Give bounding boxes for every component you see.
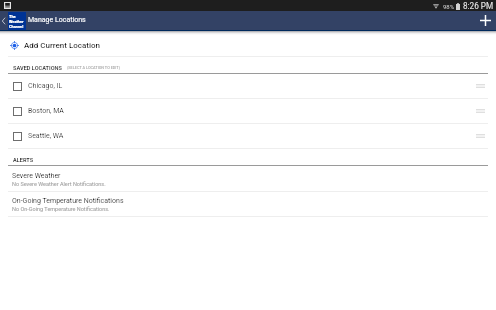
staticText: No Severe Weather Alert Notifications.: [12, 181, 106, 187]
staticText: Weather: [9, 19, 24, 24]
staticText: ALERTS: [13, 157, 34, 164]
button[interactable]: Boston, MA: [0, 99, 496, 123]
button[interactable]: Severe Weather: [0, 166, 496, 191]
staticText: On-Going Temperature Notifications: [12, 197, 124, 205]
button[interactable]: Add Current Location: [0, 35, 496, 56]
button[interactable]: Seattle, WA: [0, 124, 496, 148]
staticText: Add Current Location: [24, 41, 100, 50]
staticText: 8:26 PM: [463, 1, 494, 11]
staticText: Severe Weather: [12, 172, 61, 180]
staticText: Channel: [9, 24, 24, 29]
staticText: 98%: [443, 3, 455, 10]
button[interactable]: On-Going Temperature Notifications: [0, 192, 496, 216]
staticText: Manage Locations: [28, 16, 86, 24]
staticText: (SELECT A LOCATION TO EDIT): [67, 65, 120, 69]
staticText: The: [9, 14, 16, 19]
staticText: Seattle, WA: [28, 132, 64, 140]
staticText: Chicago, IL: [28, 82, 63, 90]
button[interactable]: Chicago, IL: [0, 74, 496, 98]
staticText: No On-Going Temperature Notifications.: [12, 206, 110, 212]
staticText: SAVED LOCATIONS: [13, 65, 62, 72]
staticText: Boston, MA: [28, 107, 64, 115]
button[interactable]: Add location: [477, 11, 496, 30]
button[interactable]: Back: [0, 11, 8, 30]
